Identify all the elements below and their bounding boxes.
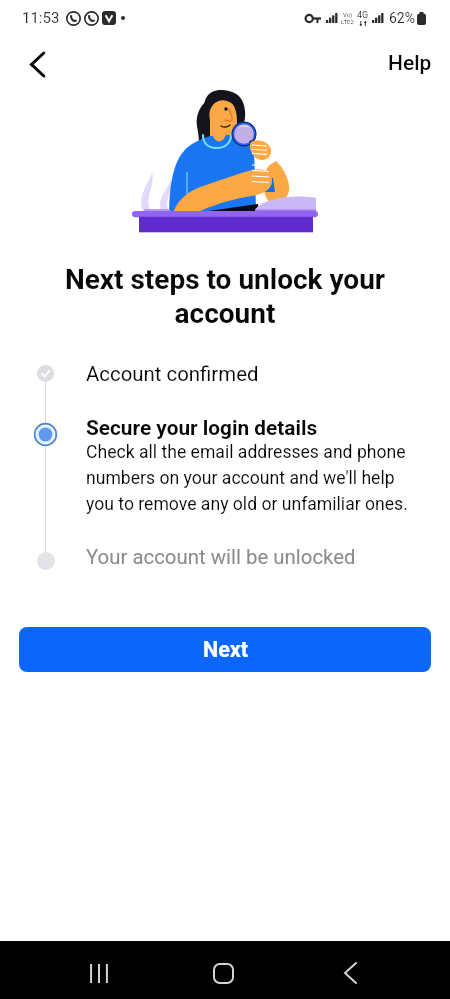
button[interactable]: Help	[380, 43, 440, 84]
button[interactable]: Next	[19, 627, 431, 672]
button[interactable]: Recent apps	[70, 944, 127, 999]
staticText: Next steps to unlock your account	[30, 263, 420, 330]
staticText: Account confirmed	[86, 362, 259, 386]
staticText: Secure your login details	[86, 416, 318, 440]
button[interactable]: Back	[15, 42, 59, 86]
staticText: Check all the email addresses and phone …	[86, 442, 420, 514]
button[interactable]: Back	[322, 944, 379, 999]
button[interactable]: Home	[195, 944, 252, 999]
staticText: 4G	[357, 10, 369, 21]
staticText: Your account will be unlocked	[86, 545, 356, 569]
staticText: 62%	[389, 10, 415, 26]
staticText: Next	[203, 637, 248, 662]
staticText: Help	[388, 51, 432, 76]
staticText: 11:53	[22, 9, 60, 27]
staticText: LTE2	[341, 18, 354, 25]
staticText: Vo)	[343, 11, 353, 18]
